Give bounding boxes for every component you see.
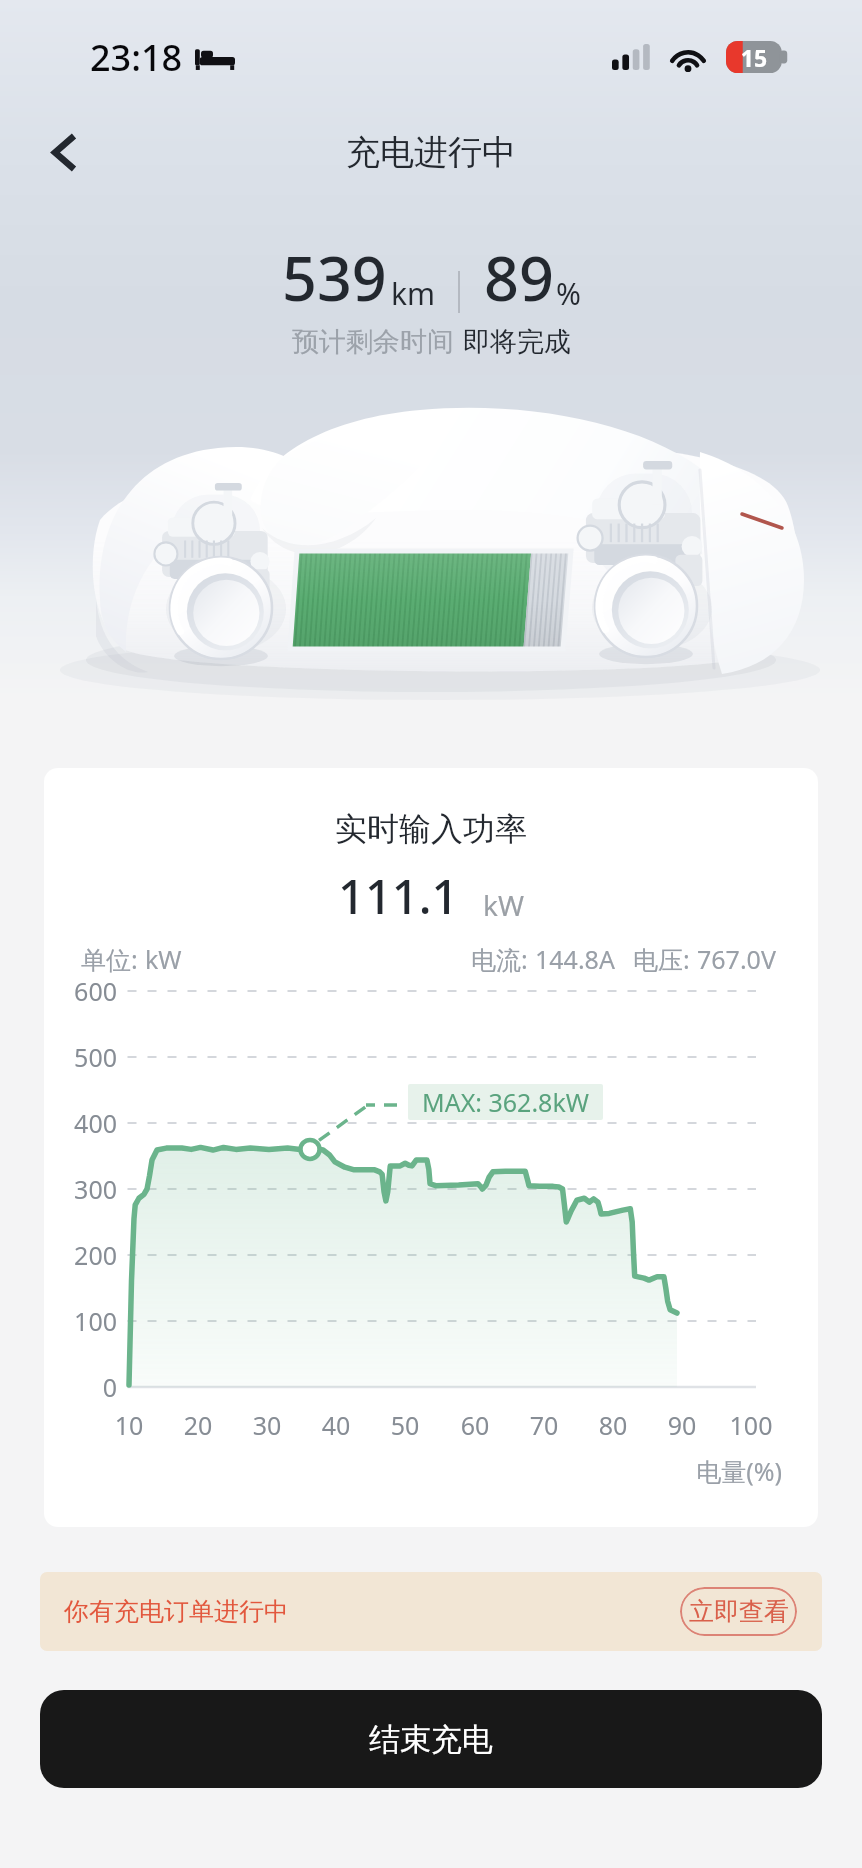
staticText: 600 bbox=[2, 974, 117, 1008]
staticText: 23:18 bbox=[90, 33, 183, 82]
staticText: 40 bbox=[296, 1408, 376, 1442]
staticText: 400 bbox=[2, 1106, 117, 1140]
button[interactable]: Back bbox=[26, 114, 102, 190]
staticText: 30 bbox=[227, 1408, 307, 1442]
staticText: 10 bbox=[89, 1408, 169, 1442]
staticText: 70 bbox=[504, 1408, 584, 1442]
staticText: 立即查看 bbox=[689, 1596, 789, 1627]
staticText: 你有充电订单进行中 bbox=[64, 1596, 289, 1627]
staticText: % bbox=[556, 273, 581, 314]
staticText: 80 bbox=[573, 1408, 653, 1442]
staticText: 15 bbox=[726, 42, 782, 73]
staticText: kW bbox=[483, 886, 524, 924]
staticText: 539 bbox=[282, 236, 387, 319]
button[interactable]: 立即查看 bbox=[680, 1587, 797, 1636]
staticText: 结束充电 bbox=[369, 1720, 493, 1759]
staticText: 500 bbox=[2, 1040, 117, 1074]
staticText: 电量(%) bbox=[622, 1454, 782, 1488]
staticText: 充电进行中 bbox=[346, 131, 516, 174]
staticText: km bbox=[391, 273, 436, 314]
staticText: 200 bbox=[2, 1238, 117, 1272]
staticText: 单位: bbox=[81, 942, 138, 976]
staticText: 电压: bbox=[633, 942, 690, 976]
staticText: 20 bbox=[158, 1408, 238, 1442]
button[interactable]: 你有充电订单进行中 bbox=[40, 1572, 822, 1651]
staticText: 300 bbox=[2, 1172, 117, 1206]
staticText: MAX: 362.8kW bbox=[422, 1085, 590, 1119]
staticText: kW bbox=[145, 942, 182, 976]
staticText: 50 bbox=[365, 1408, 445, 1442]
staticText: 111.1 bbox=[338, 864, 459, 928]
staticText: 767.0V bbox=[697, 942, 776, 976]
staticText: 100 bbox=[711, 1408, 791, 1442]
staticText: 0 bbox=[2, 1370, 117, 1404]
staticText: 实时输入功率 bbox=[44, 809, 818, 849]
staticText: 电流: bbox=[471, 942, 528, 976]
button[interactable]: 结束充电 bbox=[40, 1690, 822, 1788]
staticText: 89 bbox=[484, 236, 554, 319]
staticText: 90 bbox=[642, 1408, 722, 1442]
staticText: 预计剩余时间 bbox=[292, 325, 454, 359]
staticText: 100 bbox=[2, 1304, 117, 1338]
staticText: 144.8A bbox=[535, 942, 615, 976]
staticText: 即将完成 bbox=[463, 325, 571, 359]
staticText: 60 bbox=[435, 1408, 515, 1442]
